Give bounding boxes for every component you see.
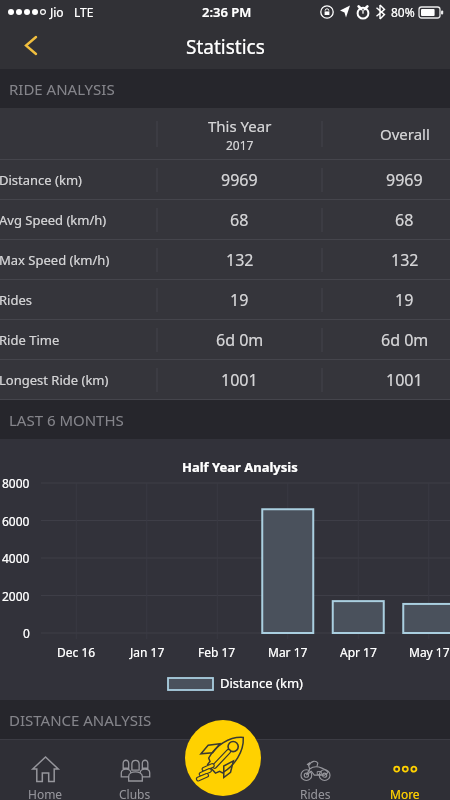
- staticText: Overall: [380, 124, 430, 144]
- staticText: Longest Ride (km): [0, 371, 109, 389]
- staticText: 6d 0m: [381, 329, 429, 351]
- staticText: 6d 0m: [216, 329, 264, 351]
- staticText: DISTANCE ANALYSIS: [9, 710, 152, 730]
- button[interactable]: More: [360, 746, 450, 800]
- staticText: Rides: [0, 291, 32, 309]
- staticText: 132: [391, 249, 419, 271]
- button[interactable]: Ride Time: [0, 320, 450, 360]
- staticText: 8000: [2, 475, 30, 491]
- staticText: Avg Speed (km/h): [0, 211, 107, 229]
- staticText: 68: [230, 209, 249, 231]
- staticText: 68: [395, 209, 414, 231]
- staticText: May 17: [409, 644, 450, 660]
- staticText: This Year: [208, 116, 272, 136]
- staticText: 9969: [386, 169, 423, 191]
- staticText: 80%: [391, 4, 415, 20]
- button[interactable]: Max Speed (km/h): [0, 240, 450, 280]
- button[interactable]: Back: [12, 26, 50, 64]
- button[interactable]: Rides: [0, 280, 450, 320]
- staticText: 1001: [221, 369, 258, 391]
- staticText: 4000: [2, 550, 30, 566]
- button[interactable]: Rides: [270, 746, 360, 800]
- staticText: Dec 16: [57, 644, 96, 660]
- button[interactable]: Distance (km): [0, 160, 450, 200]
- staticText: Max Speed (km/h): [0, 251, 110, 269]
- staticText: Apr 17: [340, 644, 377, 660]
- staticText: 2:36 PM: [202, 3, 252, 21]
- staticText: Ride Time: [0, 331, 60, 349]
- staticText: Statistics: [186, 34, 265, 60]
- staticText: Jan 17: [130, 644, 165, 660]
- staticText: 19: [395, 289, 414, 311]
- staticText: Clubs: [119, 786, 151, 800]
- staticText: Rides: [300, 786, 331, 800]
- staticText: Distance (km): [220, 674, 303, 692]
- staticText: Half Year Analysis: [182, 458, 298, 476]
- staticText: 6000: [2, 513, 30, 529]
- staticText: LAST 6 MONTHS: [9, 410, 124, 430]
- staticText: 132: [226, 249, 254, 271]
- staticText: Jio: [50, 4, 64, 20]
- button[interactable]: Home: [0, 746, 90, 800]
- staticText: RIDE ANALYSIS: [9, 79, 115, 99]
- staticText: Mar 17: [268, 644, 308, 660]
- button[interactable]: Longest Ride (km): [0, 360, 450, 400]
- staticText: Home: [28, 786, 63, 800]
- staticText: Distance (km): [0, 171, 82, 189]
- button[interactable]: New ride: [185, 720, 261, 796]
- staticText: 9969: [221, 169, 258, 191]
- button[interactable]: Avg Speed (km/h): [0, 200, 450, 240]
- staticText: 2000: [2, 588, 30, 604]
- staticText: 1001: [386, 369, 423, 391]
- staticText: Feb 17: [198, 644, 236, 660]
- staticText: LTE: [74, 4, 94, 20]
- staticText: 19: [230, 289, 249, 311]
- staticText: More: [390, 786, 420, 800]
- staticText: 0: [23, 625, 30, 641]
- button[interactable]: Clubs: [90, 746, 180, 800]
- staticText: 2017: [226, 137, 254, 153]
